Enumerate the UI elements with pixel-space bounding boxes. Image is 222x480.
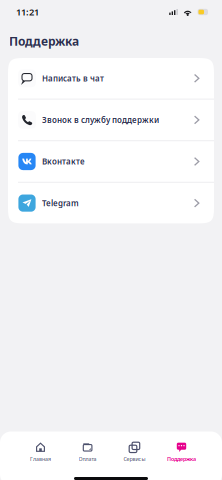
staticText: 11:21 [16,6,39,18]
staticText: Поддержка [167,455,196,462]
staticText: Главная [30,455,51,462]
button[interactable]: Написать в чат [8,58,214,99]
button[interactable]: Вконтакте [8,141,214,182]
staticText: Звонок в службу поддержки [42,115,159,125]
button[interactable]: Сервисы [111,439,158,465]
button[interactable]: Telegram [8,183,214,223]
button[interactable]: Оплата [64,439,111,465]
button[interactable]: Поддержка [158,439,205,465]
staticText: Поддержка [9,33,79,49]
staticText: Написать в чат [42,73,104,84]
button[interactable]: Главная [17,439,64,465]
staticText: Telegram [42,198,79,208]
staticText: Оплата [78,455,96,462]
button[interactable]: Звонок в службу поддержки [8,100,214,140]
staticText: Сервисы [123,455,145,462]
staticText: Вконтакте [42,156,85,167]
